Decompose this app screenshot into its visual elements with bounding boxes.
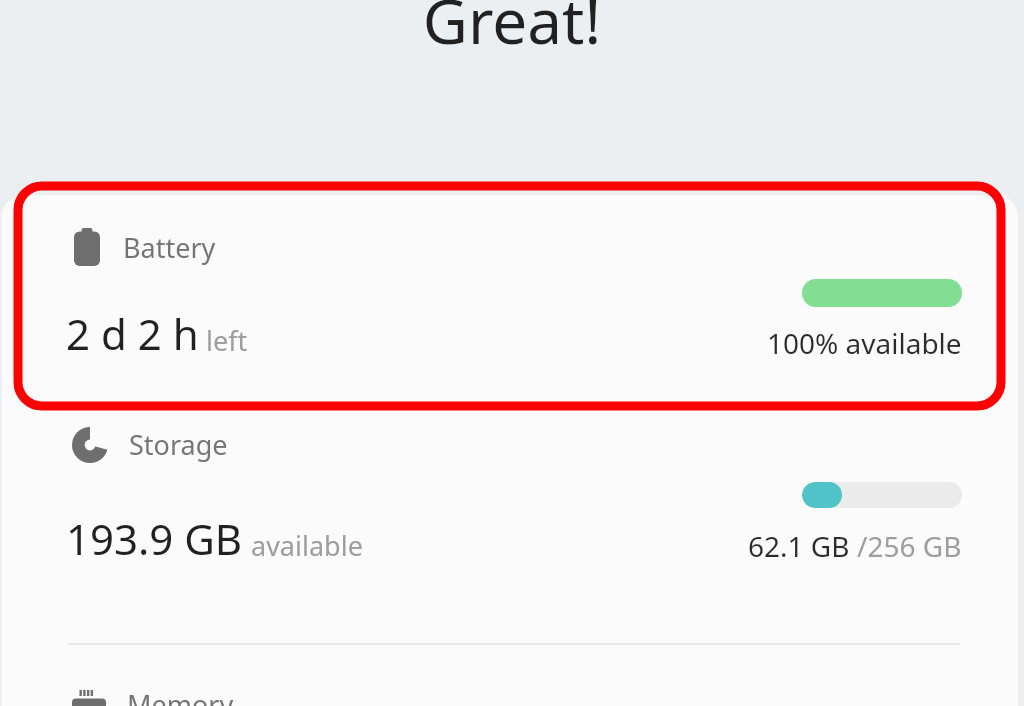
button[interactable]: Memory bbox=[2, 645, 1018, 706]
staticText: Memory bbox=[127, 686, 234, 706]
staticText: 100% available bbox=[767, 324, 962, 362]
other: Battery bbox=[74, 228, 100, 266]
staticText: 62.1 GB bbox=[748, 527, 850, 565]
staticText: Battery bbox=[123, 229, 216, 266]
other: Storage bbox=[72, 427, 108, 463]
button[interactable]: Storage bbox=[2, 402, 1018, 643]
other: Memory bbox=[72, 690, 106, 706]
staticText: left bbox=[206, 322, 248, 359]
staticText: Storage bbox=[129, 426, 228, 463]
staticText: available bbox=[251, 527, 363, 564]
staticText: 2 d 2 h bbox=[66, 305, 199, 362]
button[interactable]: Battery bbox=[2, 195, 1018, 402]
staticText: 193.9 GB bbox=[66, 510, 243, 567]
staticText: /256 GB bbox=[857, 527, 962, 565]
staticText: Great! bbox=[0, 0, 1024, 62]
